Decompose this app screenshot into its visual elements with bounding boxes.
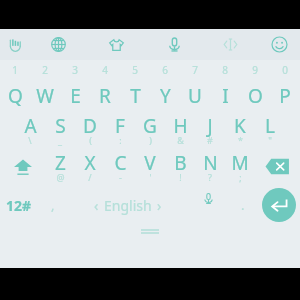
staticText: › [157,196,162,215]
button[interactable]: Handwriting [0,29,30,60]
staticText: S [55,113,66,139]
button[interactable]: L [255,111,285,148]
staticText: 9 [252,63,258,77]
staticText: C [114,150,127,176]
button[interactable]: X [75,148,105,185]
staticText: 12# [6,196,32,215]
staticText: P [279,83,291,109]
staticText: R [99,83,111,109]
staticText: K [234,113,246,139]
staticText: 2 [42,63,48,77]
button[interactable]: N [195,148,225,185]
staticText: \ [28,134,32,146]
staticText: A [24,113,37,139]
staticText: N [203,150,218,176]
staticText: V [144,150,156,176]
staticText: W [36,83,54,109]
button[interactable]: Voice input [188,185,228,225]
button[interactable]: 1 [0,60,30,80]
button[interactable]: 9 [240,60,270,80]
staticText: 4 [102,63,108,77]
staticText: 6 [162,63,168,77]
staticText: T [130,83,141,109]
staticText: / [88,171,92,183]
staticText: 3 [72,63,78,77]
button[interactable]: E [60,80,90,111]
staticText: J [207,113,213,139]
button[interactable]: P [270,80,300,111]
staticText: : [119,134,122,146]
button[interactable]: 3 [60,60,90,80]
staticText: D [83,113,97,139]
button[interactable]: 2 [30,60,60,80]
button[interactable]: U [180,80,210,111]
staticText: ( [89,134,92,146]
staticText: 5 [132,63,138,77]
staticText: 1 [12,63,18,77]
staticText: E [70,83,81,109]
staticText: H [173,113,188,139]
button[interactable]: H [165,111,195,148]
staticText: G [143,113,157,139]
staticText: 7 [192,63,198,77]
button[interactable]: I [210,80,240,111]
button[interactable]: 12# [0,185,38,225]
button[interactable]: A [15,111,45,148]
button[interactable]: Backspace [255,148,300,185]
staticText: # [207,134,213,146]
button[interactable]: ‹ [67,185,188,225]
staticText: , [51,196,55,214]
button[interactable]: 7 [180,60,210,80]
button[interactable]: R [90,80,120,111]
staticText: I [222,83,229,109]
button[interactable]: 4 [90,60,120,80]
button[interactable]: S [45,111,75,148]
staticText: Z [55,150,66,176]
button[interactable]: Emoji [258,29,300,60]
button[interactable]: Shift [0,148,45,185]
staticText: - [119,171,122,183]
button[interactable]: T [120,80,150,111]
button[interactable]: K [225,111,255,148]
staticText: @ [56,171,65,183]
button[interactable]: F [105,111,135,148]
button[interactable]: 5 [120,60,150,80]
staticText: ‹ [94,196,99,215]
button[interactable]: Theme [86,29,146,60]
button[interactable]: B [165,148,195,185]
staticText: * [238,134,243,146]
staticText: U [188,83,202,109]
button[interactable]: J [195,111,225,148]
button[interactable]: M [225,148,255,185]
button[interactable]: O [240,80,270,111]
button[interactable]: V [135,148,165,185]
button[interactable]: Y [150,80,180,111]
staticText: 8 [222,63,228,77]
button[interactable]: C [105,148,135,185]
button[interactable]: G [135,111,165,148]
staticText: & [177,134,184,146]
staticText: F [115,113,125,139]
staticText: ! [179,171,182,183]
button[interactable]: Q [0,80,30,111]
staticText: L [265,113,275,139]
staticText: English [104,196,152,215]
button[interactable]: Language [30,29,86,60]
staticText: ) [149,134,152,146]
button[interactable]: Voice input [146,29,202,60]
button[interactable]: Enter [257,185,300,225]
button[interactable]: 0 [270,60,300,80]
button[interactable]: 6 [150,60,180,80]
staticText: Q [8,83,23,109]
button[interactable]: Z [45,148,75,185]
button[interactable]: Cursor control [202,29,258,60]
staticText: Y [160,83,171,109]
staticText: X [84,150,96,176]
button[interactable]: 8 [210,60,240,80]
staticText: . [241,196,245,214]
button[interactable]: W [30,80,60,111]
button[interactable]: D [75,111,105,148]
staticText: O [248,83,263,109]
